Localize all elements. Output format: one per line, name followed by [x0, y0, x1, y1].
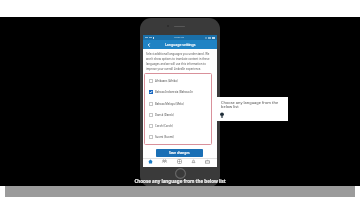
other: Back [147, 43, 151, 47]
staticText: Bahasa Melayu (Mela) [155, 102, 184, 106]
button[interactable]: Choose any language from the below list [215, 97, 288, 121]
staticText: Bahasa Indonesia (Bahasa In [155, 90, 193, 94]
button[interactable]: Czech (Czech) [149, 121, 212, 131]
staticText: Choose any language from the below list [221, 100, 279, 109]
staticText: Language settings [165, 42, 196, 47]
button[interactable]: Suomi (Suomi) [149, 132, 212, 142]
staticText: Dansk (Dansk) [155, 113, 174, 117]
staticText: Czech (Czech) [155, 124, 173, 128]
button[interactable]: Dansk (Dansk) [149, 110, 212, 120]
button[interactable]: Home [144, 157, 157, 165]
button[interactable]: Post [173, 157, 186, 165]
button[interactable]: Jobs [201, 157, 214, 165]
button[interactable]: Afrikaans (Afrika) [149, 76, 212, 86]
staticText: Select additional languages you understa… [146, 52, 210, 71]
staticText: Save changes [169, 151, 190, 155]
staticText: Afrikaans (Afrika) [155, 79, 178, 83]
staticText: 10:42 AM [174, 36, 185, 39]
staticText: Suomi (Suomi) [155, 135, 174, 139]
button[interactable]: Notifications [187, 157, 200, 165]
button[interactable]: My Network [158, 157, 171, 165]
button[interactable]: Bahasa Melayu (Mela) [149, 99, 212, 109]
button[interactable]: Bahasa Indonesia (Bahasa In [149, 87, 212, 97]
staticText: Choose any language from the below list [134, 178, 226, 184]
button[interactable]: Save changes [156, 149, 203, 157]
button[interactable]: Language settings [143, 40, 217, 49]
